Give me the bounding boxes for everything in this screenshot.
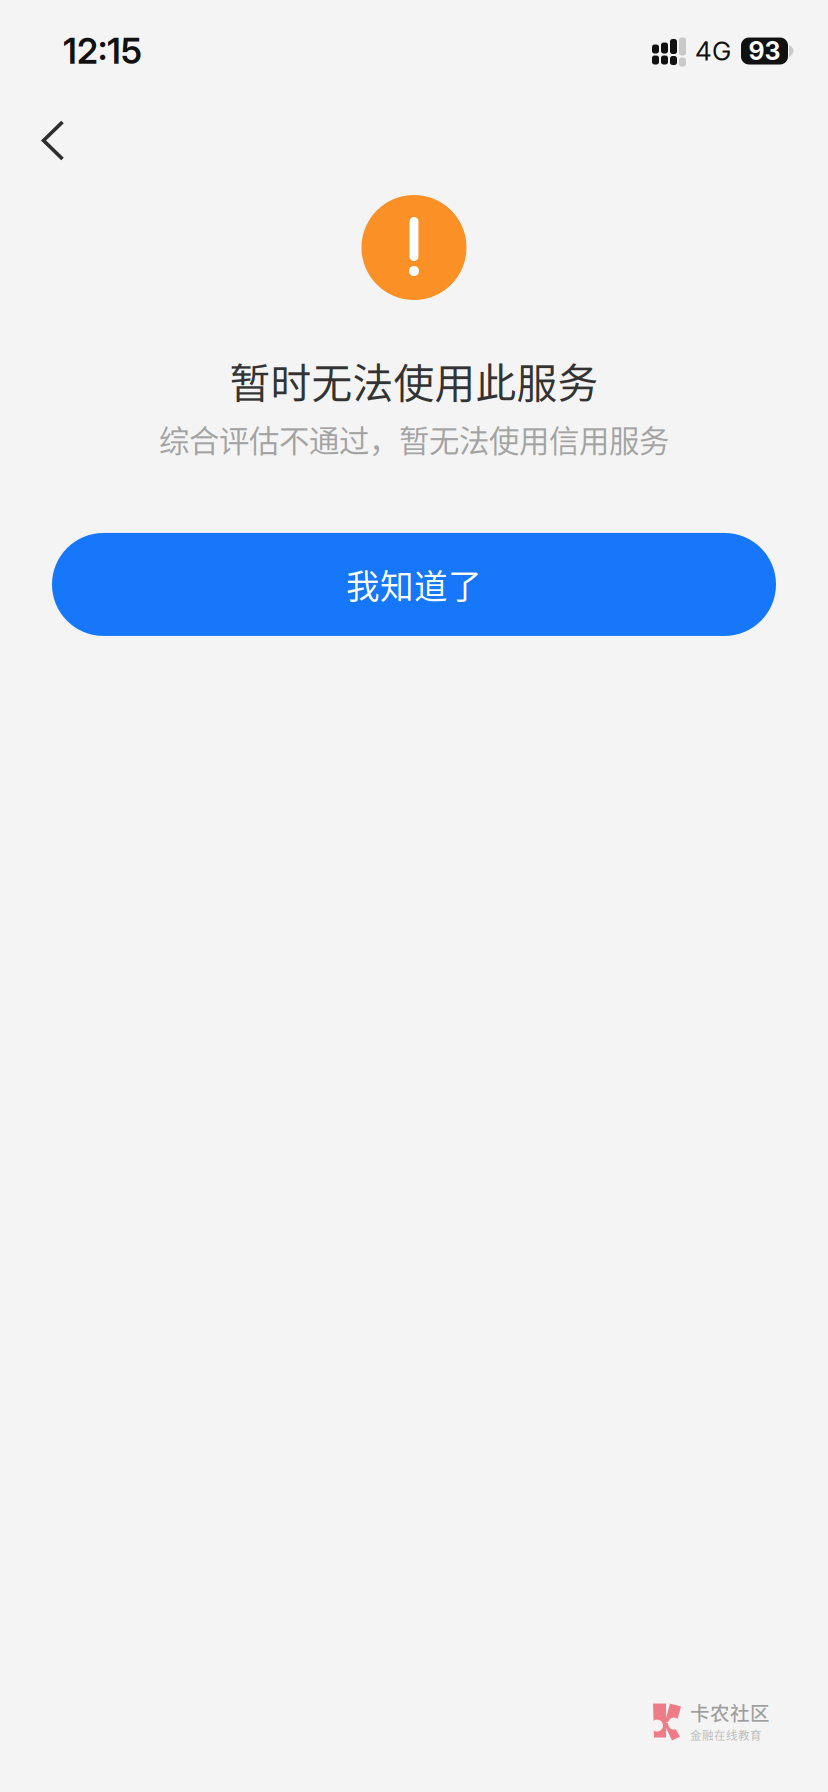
staticText: 金融在线教育 [690,1726,762,1743]
staticText: 12:15 [63,30,142,72]
staticText: 我知道了 [346,560,482,609]
button[interactable]: 我知道了 [52,533,776,636]
staticText: 4G [695,35,731,67]
staticText: 卡农社区 [690,1698,770,1726]
button[interactable]: Back [11,98,95,182]
staticText: 暂时无法使用此服务 [229,351,598,410]
staticText: 93 [748,36,780,66]
staticText: 综合评估不通过，暂无法使用信用服务 [159,417,669,461]
